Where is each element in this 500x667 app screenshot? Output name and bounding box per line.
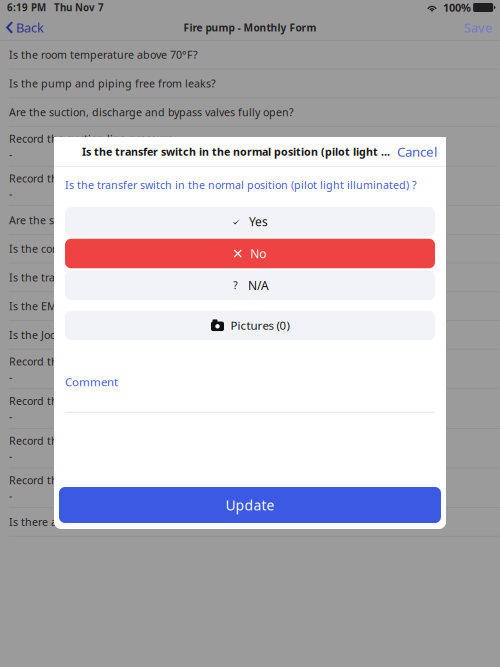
button[interactable]: ? (65, 271, 435, 300)
button[interactable]: Back (0, 15, 51, 40)
staticText: Record the suction line pressure (9, 132, 173, 146)
staticText: Is there any water leakage from the pack… (9, 515, 277, 529)
staticText: Back (16, 19, 44, 36)
staticText: No (250, 245, 266, 262)
staticText: Yes (249, 213, 268, 230)
staticText: Is the controller in the “Auto” position… (9, 242, 205, 256)
button[interactable]: Yes (65, 207, 435, 236)
staticText: Record the discharge line pressure (9, 171, 186, 185)
staticText: Pictures (0) (230, 317, 289, 333)
staticText: Are the suction, discharge and bypass va… (9, 105, 294, 119)
staticText: ? (233, 278, 237, 292)
staticText: Record the fire pump start pressure (9, 433, 190, 448)
button[interactable]: Pictures (0) (65, 311, 435, 340)
staticText: 6:19 PM (7, 1, 46, 14)
staticText: 100% (443, 0, 471, 15)
button[interactable]: Update (59, 487, 441, 523)
staticText: - (9, 369, 12, 384)
button[interactable]: No (65, 239, 435, 268)
staticText: - (9, 147, 12, 161)
staticText: Fire pump - Monthly Form (183, 21, 316, 34)
staticText: Are the suction screens clean and free o… (9, 213, 256, 227)
staticText: Record the jockey pump stop pressure (9, 394, 204, 408)
staticText: - (9, 186, 12, 200)
staticText: Is the transfer switch in the normal pos… (82, 144, 390, 159)
staticText: Cancel (397, 143, 437, 160)
staticText: Thu Nov 7 (54, 1, 104, 14)
staticText: Is the transfer switch in the normal pos… (65, 178, 417, 192)
staticText: - (9, 409, 12, 423)
staticText: Record the jockey pump start pressure (9, 354, 205, 368)
staticText: Is the EM light on the controller illumi… (9, 299, 238, 313)
staticText: - (9, 488, 12, 502)
staticText: Is the pump and piping free from leaks? (9, 76, 216, 90)
staticText: Is the room temperature above 70°F? (9, 48, 198, 62)
button[interactable]: Cancel (389, 137, 446, 165)
staticText: N/A (248, 277, 269, 293)
staticText: - (9, 449, 12, 463)
staticText: Is the Jockey pump operating normally? (9, 328, 212, 342)
staticText: Record the fire pump stop pressure (9, 473, 189, 487)
staticText: Is the transfer switch in the normal pos… (9, 270, 237, 284)
staticText: Comment (65, 374, 118, 390)
staticText: Save (464, 19, 492, 36)
button[interactable]: Save (457, 15, 500, 40)
staticText: Update (225, 496, 274, 514)
